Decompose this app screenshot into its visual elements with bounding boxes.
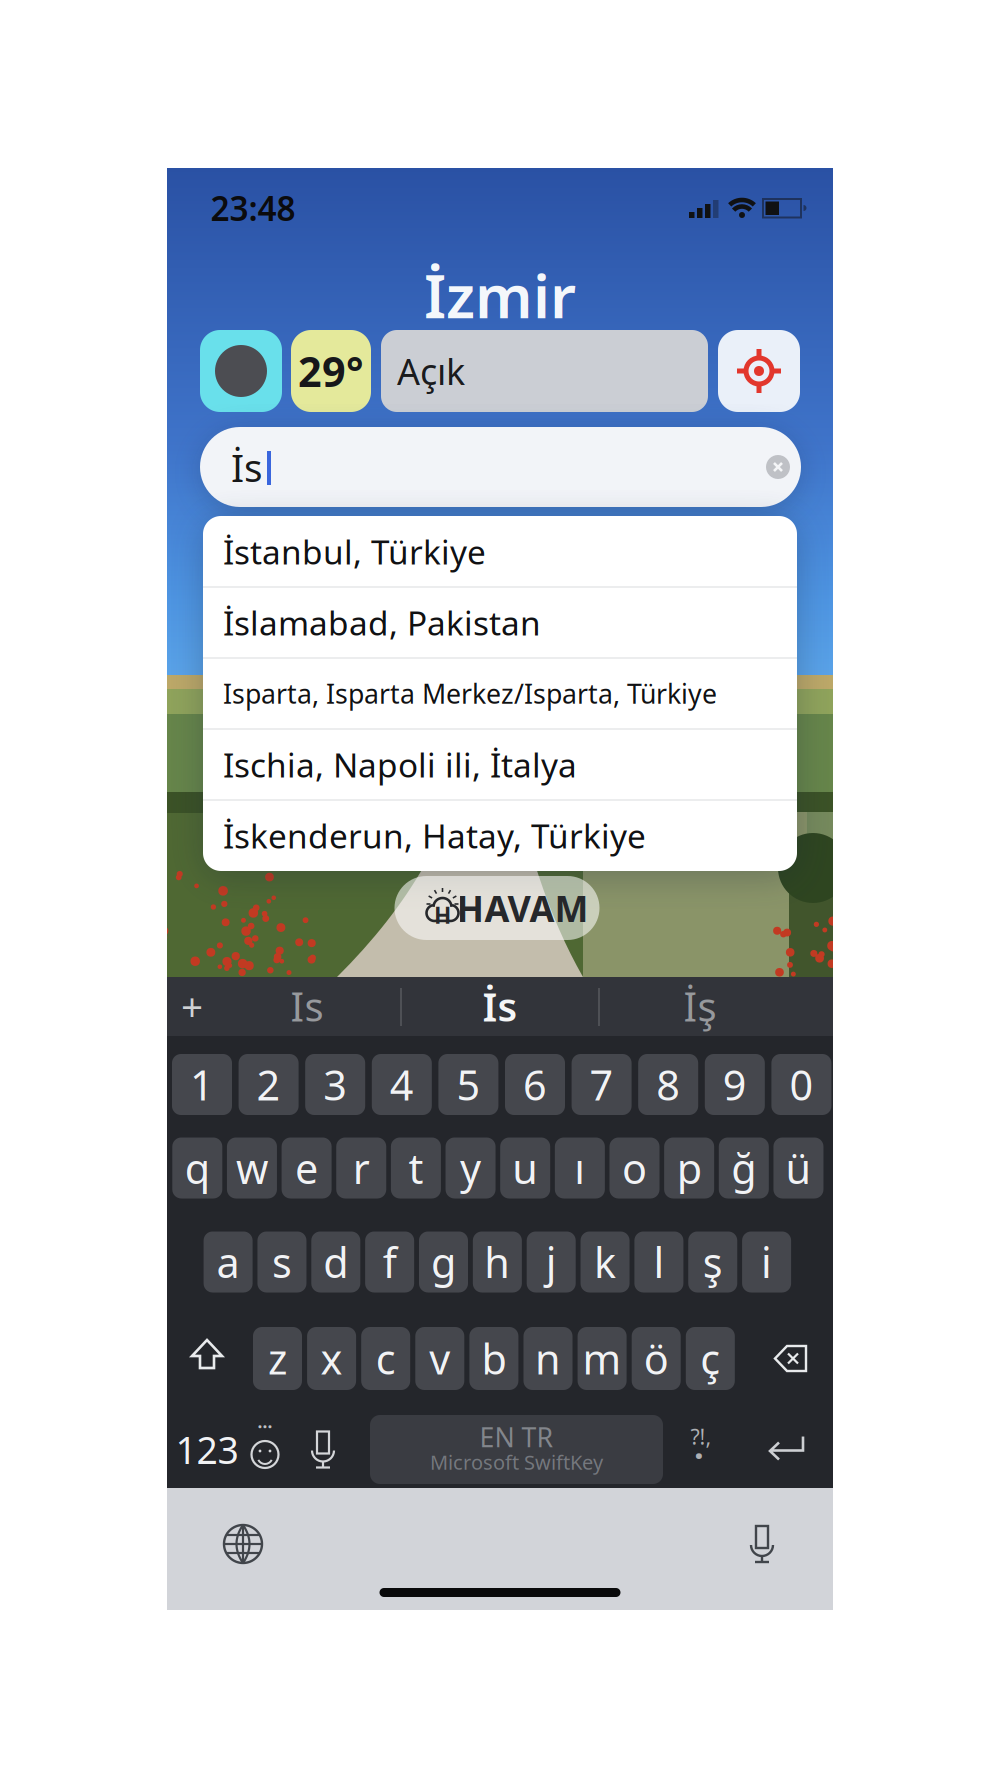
button[interactable]: ı [555,1137,605,1198]
button[interactable]: w [227,1137,277,1198]
button[interactable]: a [204,1231,253,1292]
button[interactable]: h [473,1231,522,1292]
staticText: ı [574,1141,585,1195]
staticText: h [484,1235,510,1289]
button[interactable]: q [172,1137,222,1198]
staticText: İş [683,979,716,1032]
staticText: ğ [731,1141,756,1195]
staticText: İs [482,979,517,1032]
button[interactable]: e [282,1137,332,1198]
button[interactable]: Sıcaklık [291,330,371,412]
button[interactable]: 3 [305,1054,365,1115]
staticText: Is [290,979,323,1032]
button[interactable]: 0 [771,1054,831,1115]
button[interactable]: s [257,1231,306,1292]
button[interactable]: n [523,1327,572,1390]
button[interactable]: t [391,1137,441,1198]
button[interactable]: k [580,1231,629,1292]
button[interactable]: v [415,1327,464,1390]
staticText: ş [703,1235,723,1289]
staticText: x [321,1331,343,1386]
button[interactable]: ş [688,1231,737,1292]
button[interactable]: Isparta, Isparta Merkez/Isparta, Türkiye [203,658,797,729]
button[interactable]: Konumumu bul [718,330,800,412]
staticText: 23:48 [210,186,295,230]
button[interactable]: 1 [172,1054,232,1115]
staticText: o [622,1141,647,1195]
button[interactable]: l [634,1231,683,1292]
button[interactable]: c [361,1327,410,1390]
staticText: Isparta, Isparta Merkez/Isparta, Türkiye [223,676,717,711]
staticText: g [431,1235,456,1289]
button[interactable]: Noktalama [679,1416,723,1482]
button[interactable]: Ekle [170,976,214,1035]
staticText: İstanbul, Türkiye [223,529,486,574]
button[interactable]: 6 [505,1054,565,1115]
button[interactable]: d [311,1231,360,1292]
staticText: İskenderun, Hatay, Türkiye [223,813,646,858]
button[interactable]: İş [625,976,775,1035]
button[interactable]: Hava durumu [200,330,282,412]
staticText: t [408,1141,423,1195]
button[interactable]: İs [415,976,585,1035]
staticText: c [376,1331,396,1386]
button[interactable]: 2 [239,1054,299,1115]
button[interactable]: u [500,1137,550,1198]
button[interactable]: Ischia, Napoli ili, İtalya [203,729,797,800]
staticText: 29° [298,344,364,398]
staticText: r [353,1141,370,1195]
button[interactable]: ç [686,1327,735,1390]
staticText: k [594,1235,616,1289]
staticText: · [694,1431,704,1477]
button[interactable]: Klavyeyi değiştir [220,1521,266,1567]
staticText: 9 [723,1057,747,1112]
button[interactable]: ğ [719,1137,769,1198]
button[interactable]: i [742,1231,791,1292]
staticText: q [185,1141,210,1195]
button[interactable]: Dikte [745,1520,779,1568]
button[interactable]: Temizle [766,455,790,479]
button[interactable]: j [527,1231,576,1292]
staticText: f [383,1235,397,1289]
staticText: 3 [323,1057,347,1112]
button[interactable]: 8 [638,1054,698,1115]
button[interactable]: Sesli yazma [306,1425,340,1473]
button[interactable]: 4 [372,1054,432,1115]
button[interactable]: Is [232,976,382,1035]
button[interactable]: r [336,1137,386,1198]
staticText: m [583,1331,622,1386]
staticText: İzmir [424,255,576,335]
button[interactable]: f [365,1231,414,1292]
button[interactable]: p [664,1137,714,1198]
button[interactable]: Enter [757,1416,813,1482]
staticText: ç [700,1331,720,1386]
button[interactable]: 5 [438,1054,498,1115]
button[interactable]: Emoji [243,1416,287,1482]
button[interactable]: g [419,1231,468,1292]
staticText: H [434,900,451,930]
button[interactable]: Sil [757,1327,817,1390]
button[interactable]: Boşluk [370,1415,663,1484]
button[interactable]: 7 [572,1054,632,1115]
staticText: 5 [456,1057,480,1112]
button[interactable]: ö [632,1327,681,1390]
button[interactable]: z [253,1327,302,1390]
button[interactable]: b [469,1327,518,1390]
button[interactable]: o [609,1137,659,1198]
staticText: a [217,1235,240,1289]
staticText: i [761,1235,772,1289]
button[interactable]: m [578,1327,627,1390]
staticText: 123 [175,1425,238,1474]
button[interactable]: 9 [705,1054,765,1115]
button[interactable]: İskenderun, Hatay, Türkiye [203,800,797,871]
staticText: İslamabad, Pakistan [223,600,541,645]
button[interactable]: İstanbul, Türkiye [203,516,797,587]
button[interactable]: x [307,1327,356,1390]
button[interactable]: ü [773,1137,823,1198]
button[interactable]: y [446,1137,496,1198]
button[interactable]: İslamabad, Pakistan [203,587,797,658]
staticText: l [653,1235,664,1289]
staticText: z [268,1331,287,1386]
button[interactable]: Shift [179,1327,235,1390]
button[interactable]: 123 [175,1416,239,1482]
